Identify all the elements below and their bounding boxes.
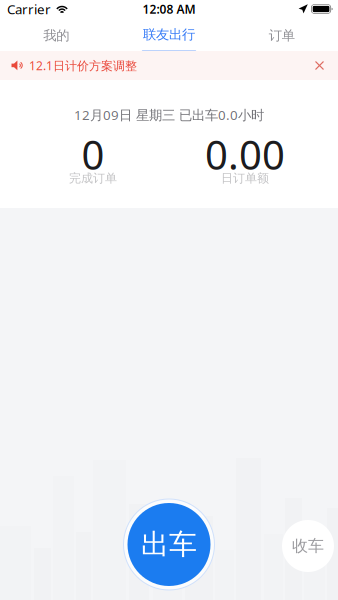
button[interactable]: 我的 (0, 18, 113, 51)
staticText: 日订单额 (221, 171, 269, 185)
staticText: 收车 (292, 536, 324, 556)
staticText: 完成订单 (69, 171, 117, 185)
staticText: 12:08 AM (142, 1, 195, 17)
button[interactable]: 订单 (225, 18, 338, 51)
staticText: 12.1日计价方案调整 (29, 57, 137, 73)
staticText: 0.00 (205, 128, 285, 181)
staticText: Carrier (7, 0, 51, 18)
button[interactable]: 收车 (282, 520, 334, 572)
staticText: 我的 (43, 27, 69, 44)
button[interactable]: 联友出行 (113, 18, 225, 51)
staticText: 订单 (269, 27, 295, 44)
staticText: 出车 (141, 527, 197, 562)
staticText: 联友出行 (143, 26, 195, 43)
staticText: 12月09日 星期三 已出车0.0小时 (74, 106, 264, 124)
button[interactable]: 出车 (123, 499, 214, 590)
button[interactable]: 关闭 (309, 55, 330, 76)
staticText: 0 (81, 128, 104, 181)
